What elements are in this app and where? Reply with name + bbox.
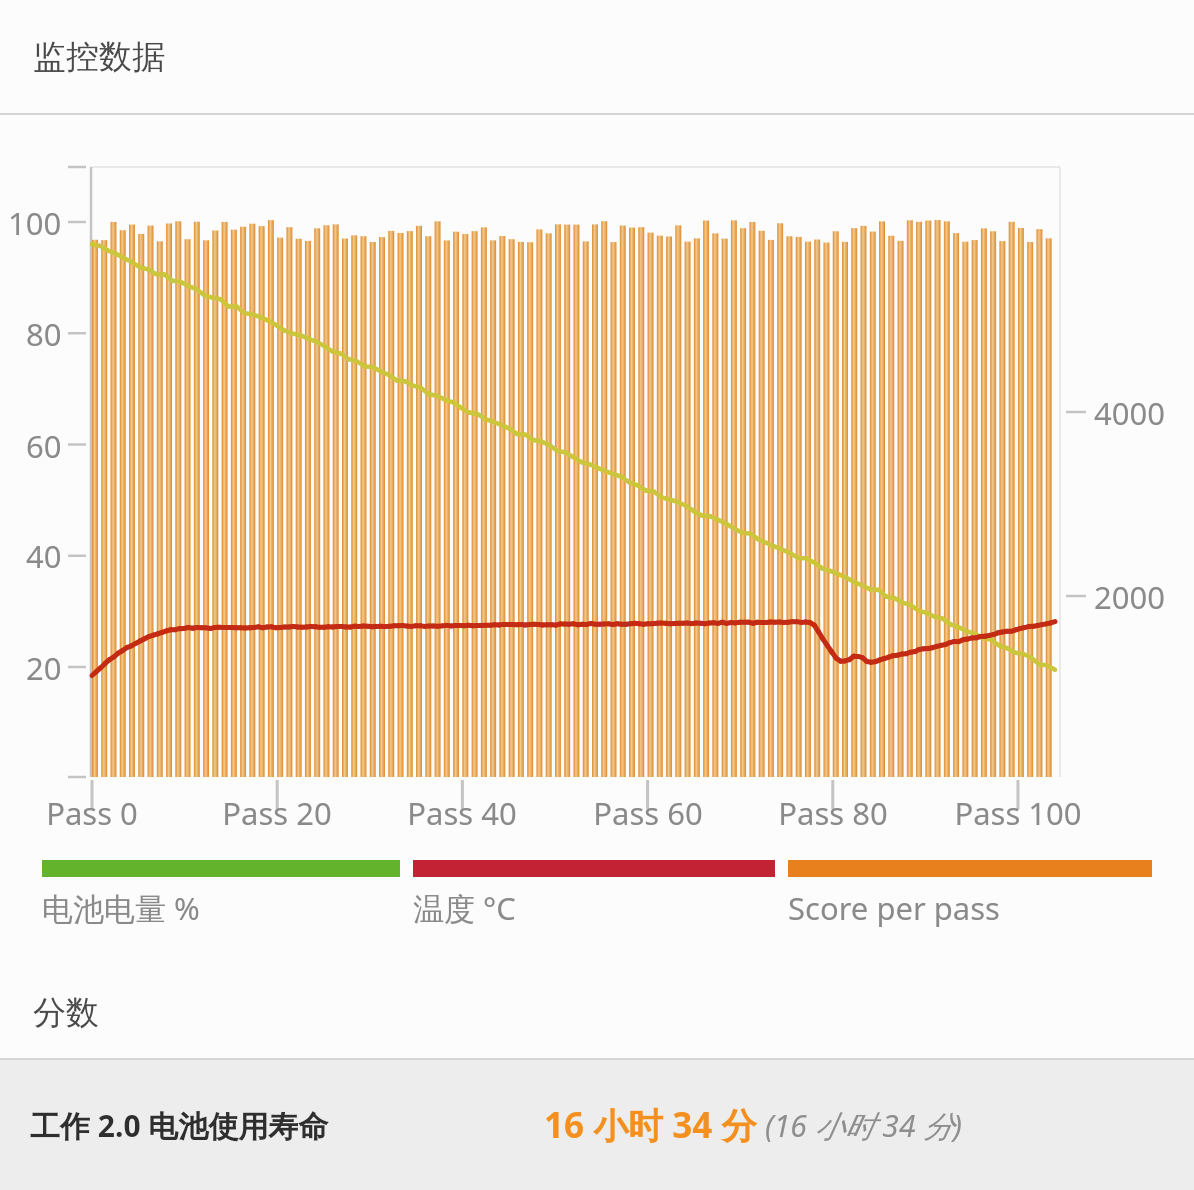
staticText: 16 小时 34 分: [544, 1101, 757, 1149]
button[interactable]: 监控数据: [0, 0, 1194, 113]
button[interactable]: 工作 2.0 电池使用寿命: [0, 1060, 1194, 1190]
staticText: 60: [26, 425, 62, 467]
staticText: 2000: [1094, 576, 1165, 618]
staticText: 100: [8, 202, 62, 244]
staticText: 20: [26, 647, 62, 689]
staticText: Score per pass: [788, 887, 1000, 929]
staticText: 监控数据: [33, 36, 165, 78]
staticText: 工作 2.0 电池使用寿命: [30, 1105, 329, 1146]
staticText: 分数: [33, 992, 99, 1034]
staticText: 4000: [1094, 392, 1165, 434]
staticText: Pass 40: [407, 792, 517, 834]
button[interactable]: 电池电量 %: [42, 860, 400, 929]
staticText: Pass 20: [222, 792, 332, 834]
staticText: 80: [26, 313, 62, 355]
button[interactable]: 温度 °C: [413, 860, 775, 929]
staticText: Pass 0: [46, 792, 138, 834]
button[interactable]: 分数: [0, 967, 1194, 1058]
staticText: 40: [26, 535, 62, 577]
staticText: Pass 100: [954, 792, 1082, 834]
staticText: (16 小时 34 分): [765, 1105, 962, 1146]
staticText: Pass 80: [778, 792, 888, 834]
staticText: Pass 60: [593, 792, 703, 834]
button[interactable]: Score per pass: [788, 860, 1152, 929]
staticText: 温度 °C: [413, 887, 516, 929]
staticText: 电池电量 %: [42, 887, 200, 929]
